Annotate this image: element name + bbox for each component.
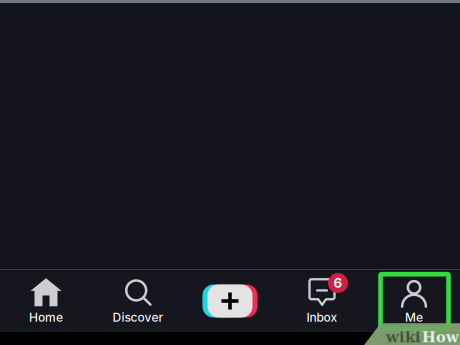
staticText: wiki [386, 328, 421, 345]
staticText: Discover [112, 310, 163, 325]
staticText: Home [29, 310, 63, 325]
button[interactable]: Me [368, 277, 460, 325]
button[interactable]: Create [184, 284, 276, 317]
staticText: Inbox [306, 310, 337, 325]
button[interactable]: Home [0, 277, 92, 325]
staticText: 6 [333, 275, 342, 291]
button[interactable]: Discover [92, 277, 184, 325]
button[interactable]: Inbox [276, 277, 368, 325]
staticText: How [422, 328, 459, 345]
staticText: Me [405, 310, 423, 325]
